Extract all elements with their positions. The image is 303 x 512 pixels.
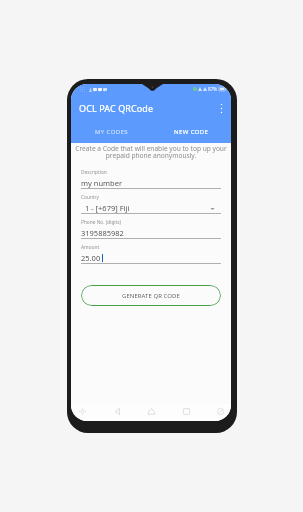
button[interactable]: Back: [109, 404, 125, 419]
button[interactable]: Country: [81, 189, 221, 214]
staticText: Country: [81, 194, 100, 201]
button[interactable]: More options: [213, 100, 229, 116]
staticText: Amount: [81, 244, 100, 251]
button[interactable]: Description: [81, 164, 221, 189]
staticText: NEW CODE: [174, 128, 209, 136]
staticText: MY CODES: [95, 128, 128, 136]
button[interactable]: NEW CODE: [151, 121, 231, 143]
staticText: Description: [81, 169, 107, 176]
button[interactable]: Rotate screen: [212, 404, 228, 419]
staticText: GENERATE QR CODE: [122, 292, 180, 300]
staticText: Create a Code that will enable you to to…: [73, 144, 229, 160]
button[interactable]: Screenshot: [74, 404, 90, 419]
staticText: 87%: [208, 86, 218, 92]
button[interactable]: Amount: [81, 239, 221, 264]
button[interactable]: Home: [143, 404, 159, 419]
staticText: 1 - [+679] Fiji: [85, 203, 130, 213]
staticText: my number: [81, 178, 123, 188]
button[interactable]: Recents: [178, 404, 194, 419]
staticText: 25.00: [81, 253, 101, 263]
button[interactable]: GENERATE QR CODE: [81, 285, 221, 306]
button[interactable]: MY CODES: [71, 121, 151, 143]
staticText: Phone No. (digits): [81, 219, 122, 226]
button[interactable]: Phone No. (digits): [81, 214, 221, 239]
staticText: 3195885982: [81, 228, 124, 238]
staticText: OCL PAC QRCode: [79, 102, 154, 114]
